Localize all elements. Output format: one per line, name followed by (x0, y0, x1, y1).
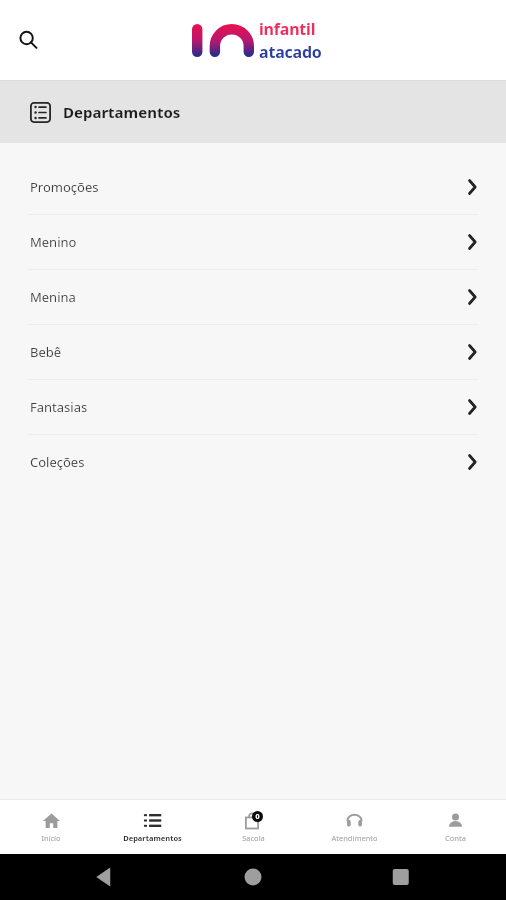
button[interactable]: Menina (0, 270, 506, 324)
button[interactable]: Atendimento (304, 807, 405, 847)
button[interactable]: Menino (0, 215, 506, 269)
staticText: infantil (259, 18, 316, 40)
staticText: Sacola (242, 833, 265, 843)
staticText: atacado (259, 41, 322, 63)
button[interactable]: 0 (203, 807, 304, 847)
staticText: Bebê (30, 343, 62, 361)
staticText: Departamentos (63, 102, 181, 122)
button[interactable]: Conta (405, 807, 506, 847)
staticText: Conta (445, 833, 466, 843)
staticText: Menino (30, 233, 77, 251)
button[interactable]: Departamentos (0, 81, 506, 143)
staticText: Atendimento (331, 833, 378, 843)
staticText: Fantasias (30, 398, 88, 416)
staticText: Início (41, 833, 61, 843)
staticText: Departamentos (123, 833, 182, 843)
button[interactable]: Promoções (0, 160, 506, 214)
button[interactable]: Coleções (0, 435, 506, 489)
button[interactable]: Bebê (0, 325, 506, 379)
staticText: 0 (255, 812, 260, 822)
button[interactable]: Buscar (6, 18, 50, 62)
staticText: Menina (30, 288, 76, 306)
button[interactable]: Fantasias (0, 380, 506, 434)
staticText: Promoções (30, 178, 99, 196)
staticText: Coleções (30, 453, 85, 471)
button[interactable]: Início (0, 807, 102, 847)
button[interactable]: Departamentos (102, 807, 203, 847)
